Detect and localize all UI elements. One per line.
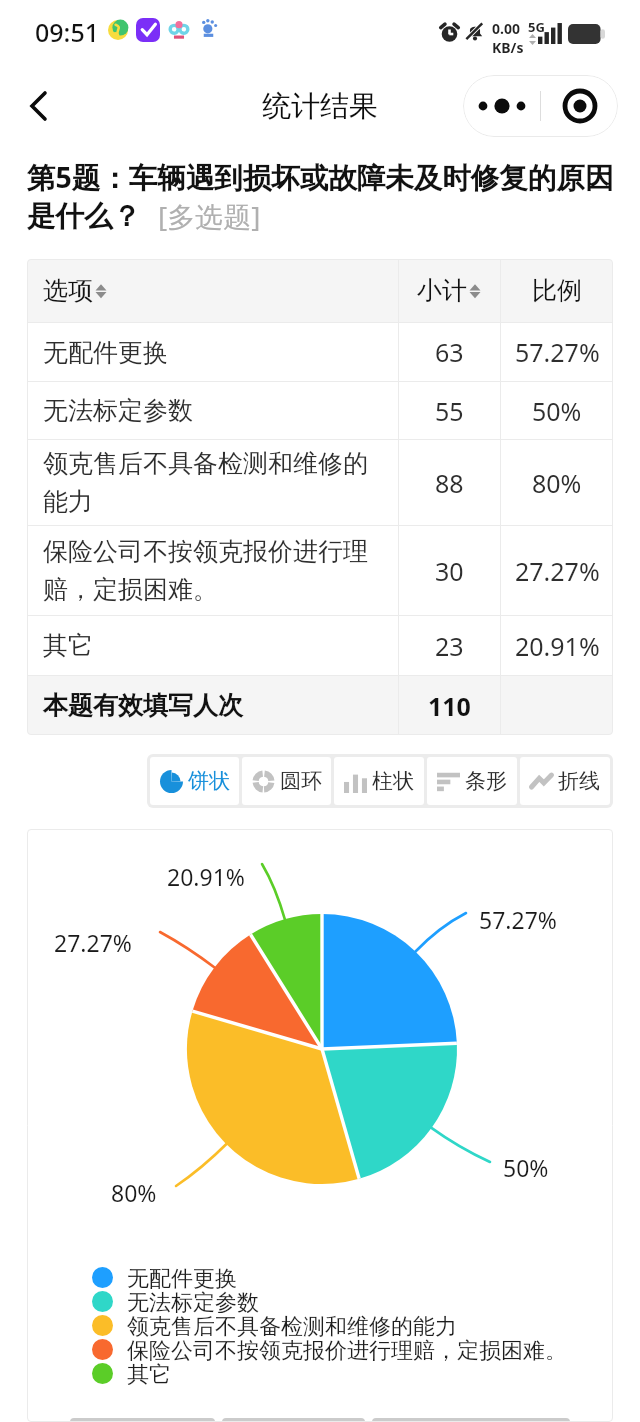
staticText: 统计结果 (262, 88, 378, 125)
button[interactable]: 条形 (427, 757, 517, 805)
staticText: 无法标定参数 (127, 1289, 259, 1313)
staticText: 80% (532, 466, 582, 500)
staticText: 20.91% (515, 629, 600, 663)
staticText: 条形 (465, 768, 507, 794)
staticText: 本题有效填写人次 (43, 690, 243, 721)
staticText: 27.27% (54, 927, 132, 958)
staticText: 圆环 (280, 768, 322, 794)
staticText: 比例 (532, 275, 582, 306)
staticText: 55 (435, 394, 464, 428)
staticText: 折线 (558, 768, 600, 794)
staticText: 57.27% (479, 904, 557, 935)
staticText: 50% (532, 394, 582, 428)
staticText: 09:51 (35, 15, 100, 49)
staticText: 是什么？ (27, 199, 141, 235)
staticText: 其它 (43, 630, 93, 661)
staticText: 无配件更换 (43, 337, 168, 368)
staticText: 23 (435, 629, 464, 663)
button[interactable]: 圆环 (242, 757, 331, 805)
staticText: 饼状 (188, 768, 230, 794)
staticText: 110 (428, 689, 471, 723)
button[interactable]: Close mini program (541, 75, 618, 137)
staticText: 选项 (43, 275, 93, 306)
staticText: 57.27% (515, 335, 600, 369)
staticText: 柱状 (372, 768, 414, 794)
staticText: 30 (435, 554, 464, 588)
staticText: 领克售后不具备检测和维修的能力 (127, 1313, 457, 1337)
button[interactable]: 柱状 (334, 757, 424, 805)
staticText: 0.00 (492, 19, 520, 38)
button[interactable]: 折线 (520, 757, 610, 805)
button[interactable]: Back (14, 82, 62, 130)
button[interactable]: More options (463, 75, 540, 137)
staticText: 领克售后不具备检测和维修的 能力 (43, 448, 368, 518)
staticText: 保险公司不按领克报价进行理 赔，定损困难。 (43, 536, 368, 606)
button[interactable]: 饼状 (150, 757, 239, 805)
staticText: 5G (528, 18, 545, 36)
staticText: 88 (435, 466, 464, 500)
staticText: 50% (503, 1152, 549, 1183)
staticText: 63 (435, 335, 464, 369)
staticText: 无配件更换 (127, 1265, 237, 1289)
staticText: KB/s (492, 38, 524, 57)
staticText: 保险公司不按领克报价进行理赔，定损困难。 (127, 1337, 567, 1361)
staticText: 小计 (417, 275, 467, 306)
staticText: 无法标定参数 (43, 395, 193, 426)
staticText: 第5题：车辆遇到损坏或故障未及时修复的原因 (27, 158, 614, 197)
staticText: [多选题] (158, 197, 261, 235)
staticText: 80% (111, 1177, 157, 1208)
staticText: 其它 (127, 1361, 171, 1385)
staticText: 27.27% (515, 554, 600, 588)
staticText: 20.91% (167, 861, 245, 892)
